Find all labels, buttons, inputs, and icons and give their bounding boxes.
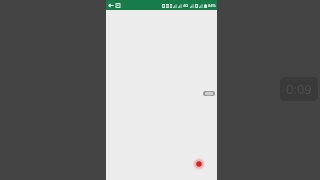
staticText: 4G xyxy=(183,3,189,8)
staticText: 0:09 xyxy=(286,80,312,98)
other: Recording timer xyxy=(286,80,312,98)
staticText: 84% xyxy=(208,3,216,8)
button[interactable]: Stop recording xyxy=(193,158,205,170)
button[interactable]: Back xyxy=(108,3,120,8)
button[interactable]: Tooltip xyxy=(203,91,215,96)
